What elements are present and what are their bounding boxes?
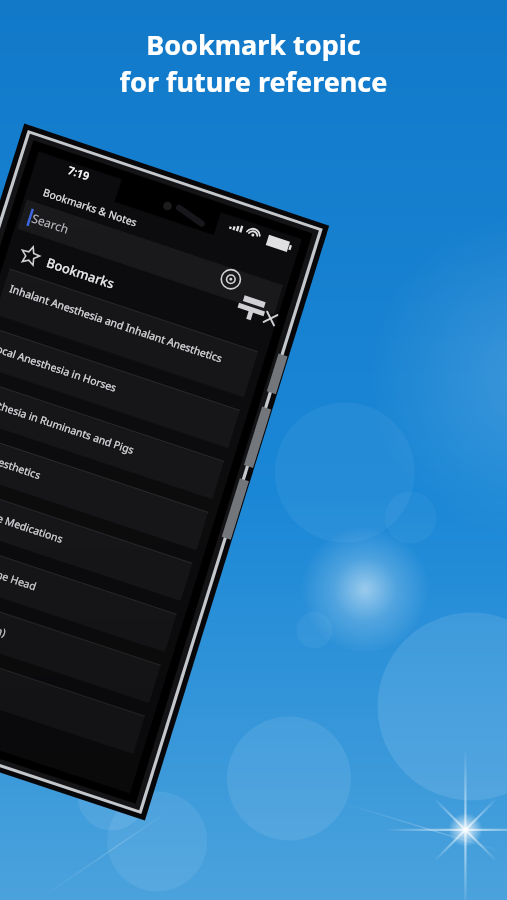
button[interactable]: Quiz — [207, 228, 233, 254]
button[interactable]: Search bookmarks and notes — [14, 205, 264, 235]
button[interactable]: Flashcards — [228, 245, 254, 271]
